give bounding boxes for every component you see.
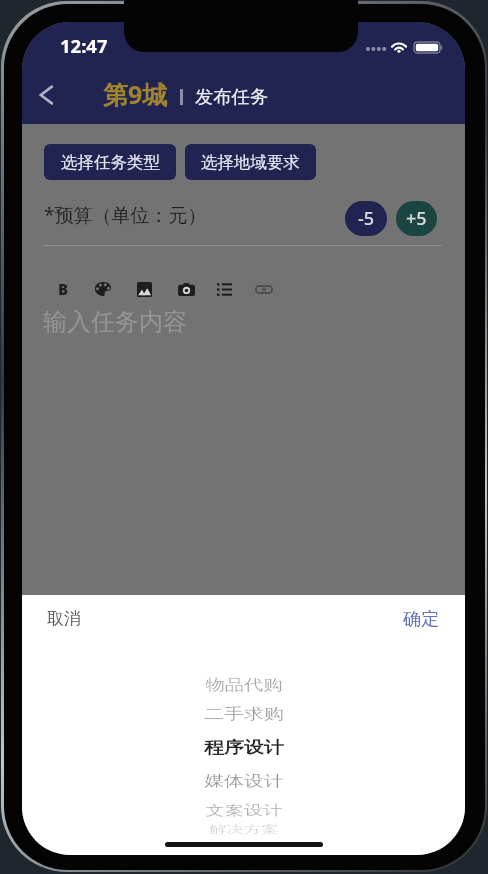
staticText: B [58, 279, 69, 299]
staticText: 选择任务类型 [61, 152, 160, 173]
staticText: 解决方案 [209, 823, 279, 836]
button[interactable]: Take photo [171, 274, 201, 304]
staticText: 确定 [403, 608, 439, 631]
staticText: 取消 [47, 608, 81, 629]
button[interactable]: 选择任务类型 [44, 144, 176, 180]
button[interactable]: 物品代购 [22, 669, 465, 701]
button[interactable]: Back [27, 76, 65, 114]
staticText: 文案设计 [206, 802, 282, 819]
staticText: 发布任务 [195, 85, 269, 108]
staticText: 选择地域要求 [201, 152, 300, 173]
button[interactable]: 确定 [394, 599, 448, 640]
staticText: 程序设计 [204, 737, 284, 758]
button[interactable]: 二手求购 [22, 698, 465, 730]
staticText: 物品代购 [206, 676, 282, 695]
button[interactable]: 程序设计 [22, 731, 465, 763]
staticText: *预算（单位：元） [44, 202, 207, 228]
staticText: 12:47 [60, 33, 108, 58]
button[interactable]: Bold [48, 274, 78, 304]
button[interactable]: Insert image [129, 274, 159, 304]
button[interactable]: 取消 [38, 599, 90, 638]
button[interactable]: +5 [396, 201, 437, 236]
staticText: 媒体设计 [204, 772, 284, 791]
button[interactable]: Text color [88, 274, 118, 304]
button[interactable]: 媒体设计 [22, 765, 465, 797]
staticText: +5 [406, 206, 427, 231]
button[interactable]: Insert link [249, 274, 279, 304]
button[interactable]: 文案设计 [22, 794, 465, 826]
button[interactable]: 选择地域要求 [185, 144, 316, 180]
button[interactable]: 解决方案 [22, 813, 465, 845]
staticText: 第9城 [103, 77, 168, 111]
staticText: 输入任务内容 [43, 307, 187, 337]
staticText: -5 [358, 206, 375, 231]
button[interactable]: Bullet list [209, 274, 239, 304]
button[interactable]: -5 [345, 201, 387, 236]
staticText: 二手求购 [204, 705, 284, 724]
